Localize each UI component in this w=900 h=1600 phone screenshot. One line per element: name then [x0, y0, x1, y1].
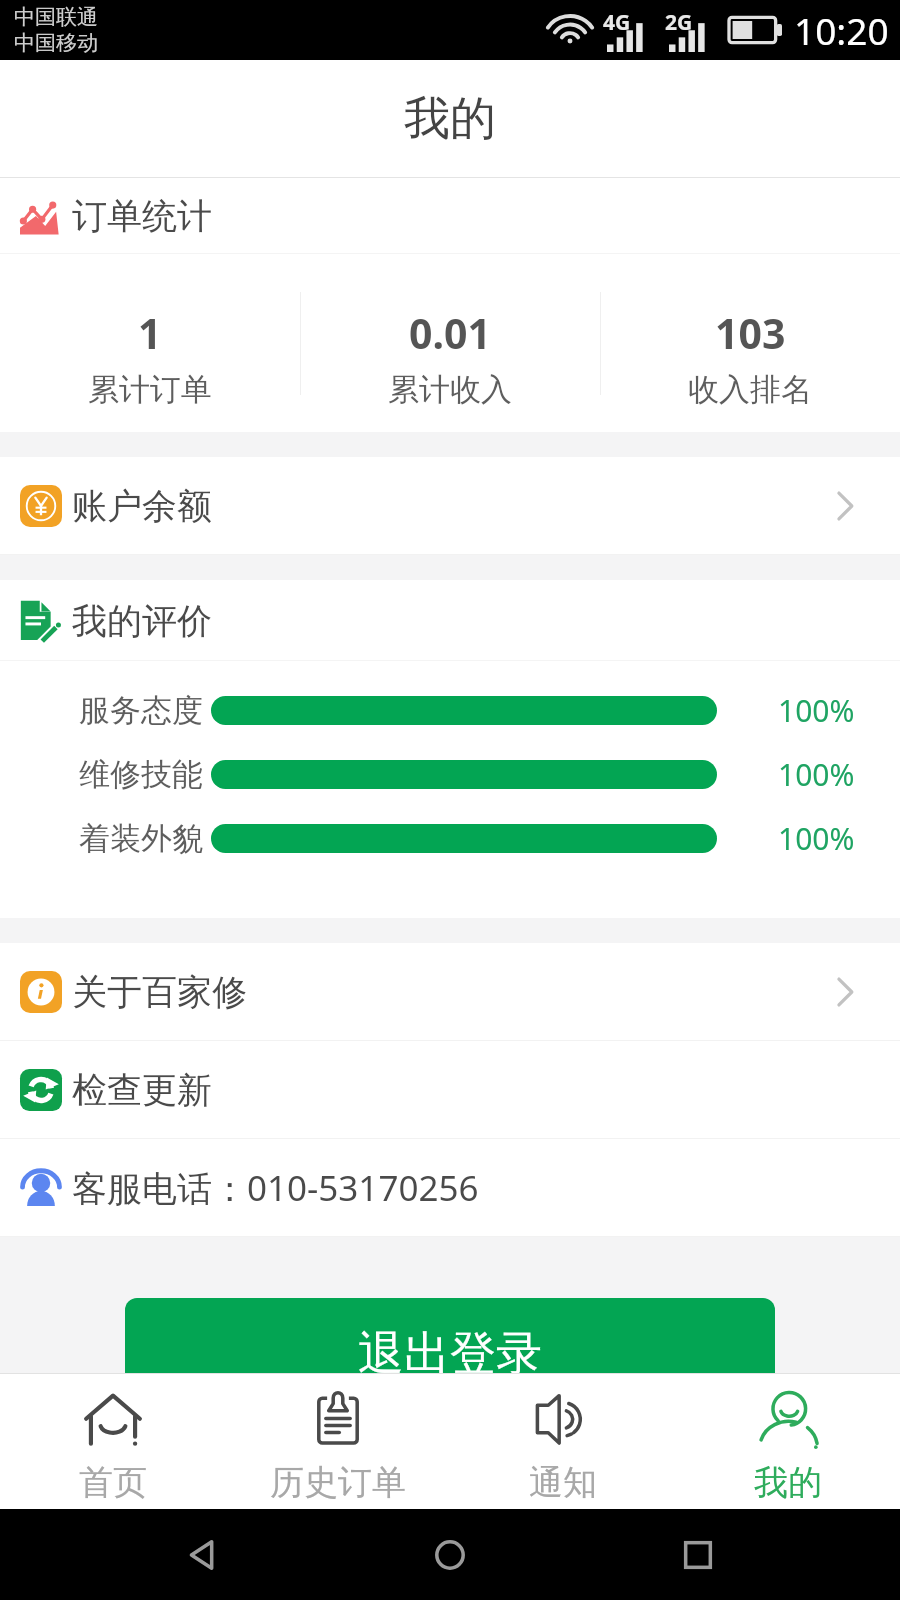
staticText: 账户余额 [72, 484, 212, 528]
staticText: 收入排名 [688, 370, 812, 409]
other: Home [428, 1533, 472, 1577]
staticText: 我的评价 [72, 599, 212, 643]
button[interactable]: 首页 [0, 1374, 225, 1504]
button[interactable]: 客服电话：010-53170256 [0, 1139, 900, 1237]
other: Recents [676, 1533, 720, 1577]
staticText: 客服电话：010-53170256 [72, 1164, 479, 1212]
staticText: 累计订单 [88, 370, 212, 409]
other: Back [180, 1533, 224, 1577]
staticText: 维修技能 [79, 755, 203, 794]
button[interactable]: 历史订单 [225, 1374, 450, 1504]
staticText: 0.01 [409, 305, 491, 361]
staticText: 2G [665, 8, 693, 37]
button[interactable]: 关于百家修 [0, 943, 900, 1041]
staticText: 通知 [529, 1461, 597, 1504]
button[interactable]: 通知 [450, 1374, 675, 1504]
staticText: 退出登录 [358, 1325, 542, 1383]
staticText: 检查更新 [72, 1068, 212, 1112]
button[interactable]: 我的 [675, 1374, 900, 1504]
staticText: 我的 [404, 90, 496, 148]
staticText: 着装外貌 [79, 819, 203, 858]
button[interactable]: 账户余额 [0, 457, 900, 555]
staticText: 10:20 [794, 5, 889, 55]
staticText: 103 [715, 305, 786, 361]
button[interactable]: 检查更新 [0, 1041, 900, 1139]
staticText: 100% [778, 754, 855, 795]
button[interactable]: 退出登录 [125, 1298, 775, 1410]
staticText: 中国联通 [14, 4, 98, 30]
staticText: 我的 [754, 1461, 822, 1504]
staticText: 4G [603, 8, 631, 37]
staticText: 100% [778, 818, 855, 859]
staticText: 100% [778, 690, 855, 731]
staticText: 服务态度 [79, 691, 203, 730]
staticText: 关于百家修 [72, 970, 247, 1014]
staticText: 首页 [79, 1461, 147, 1504]
staticText: 历史订单 [270, 1461, 406, 1504]
staticText: 中国移动 [14, 30, 98, 56]
staticText: 1 [138, 305, 162, 361]
staticText: 累计收入 [388, 370, 512, 409]
staticText: 订单统计 [72, 194, 212, 238]
